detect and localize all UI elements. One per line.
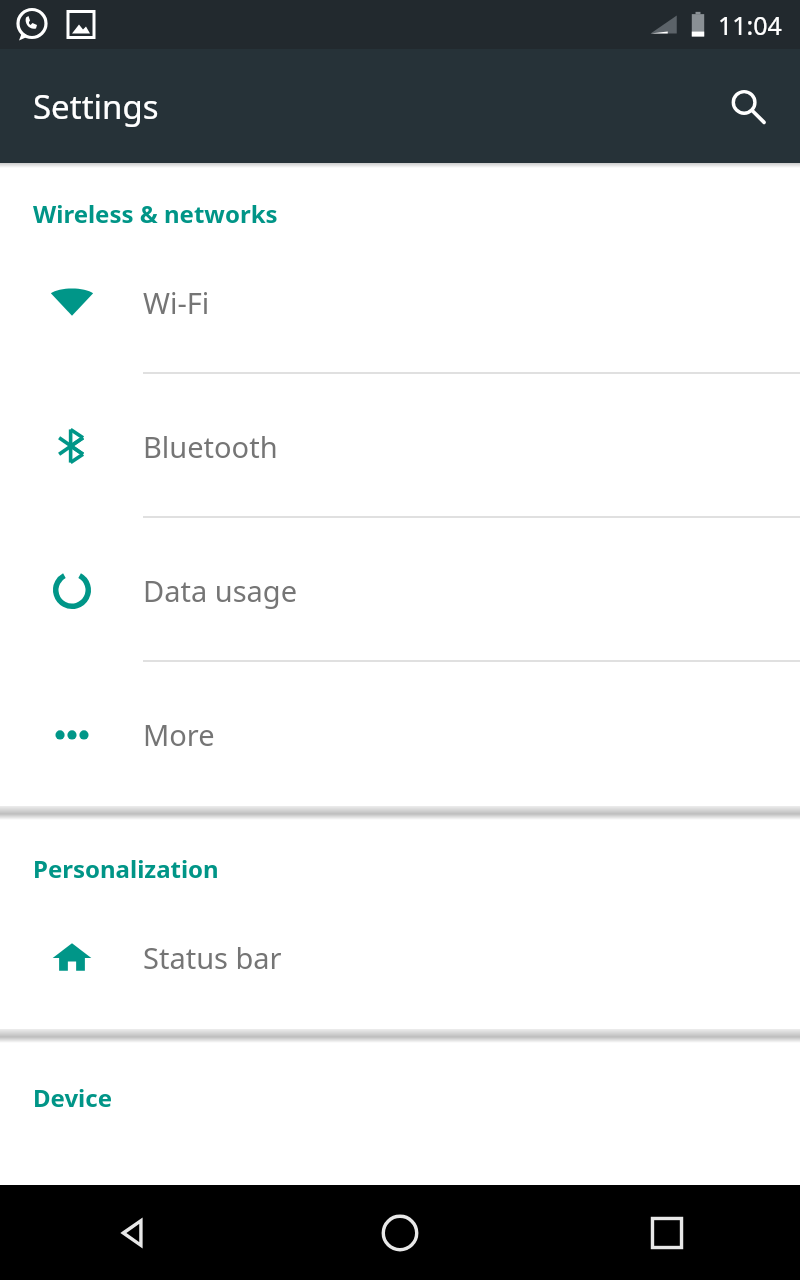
staticText: Bluetooth [143, 427, 278, 466]
button[interactable]: Search [716, 75, 778, 137]
staticText: Settings [33, 84, 159, 129]
staticText: More [143, 715, 215, 754]
button[interactable]: Wi-Fi [0, 230, 800, 374]
staticText: Status bar [143, 938, 282, 977]
button[interactable]: Recent apps [533, 1185, 800, 1280]
staticText: 11:04 [718, 8, 782, 42]
staticText: Device [33, 1081, 113, 1114]
button[interactable]: More [0, 662, 800, 806]
button[interactable]: Bluetooth [0, 374, 800, 518]
button[interactable]: Data usage [0, 518, 800, 662]
staticText: Personalization [33, 852, 219, 885]
button[interactable]: Home [266, 1185, 533, 1280]
button[interactable]: Back [0, 1185, 266, 1280]
button[interactable]: Status bar [0, 885, 800, 1029]
staticText: Wireless & networks [33, 197, 278, 230]
staticText: Wi-Fi [143, 283, 210, 322]
staticText: Data usage [143, 571, 297, 610]
